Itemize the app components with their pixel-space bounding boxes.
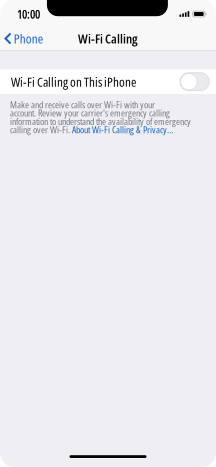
staticText: Make and receive calls over Wi-Fi with y… <box>10 98 155 111</box>
button[interactable]: Wi-Fi Calling on This iPhone <box>180 73 209 91</box>
staticText: Wi-Fi Calling on This iPhone <box>11 73 136 91</box>
staticText: calling over Wi-Fi. <box>10 123 72 136</box>
staticText: About Wi-Fi Calling & Privacy… <box>72 123 173 136</box>
button[interactable]: Phone <box>0 27 43 50</box>
staticText: 10:00 <box>17 6 40 22</box>
staticText: Phone <box>14 30 43 47</box>
staticText: Wi-Fi Calling <box>78 30 138 47</box>
staticText: information to understand the availabili… <box>10 114 191 128</box>
staticText: account. Review your carrier's emergency… <box>10 106 170 119</box>
button[interactable]: About Wi-Fi Calling & Privacy… <box>72 123 173 136</box>
